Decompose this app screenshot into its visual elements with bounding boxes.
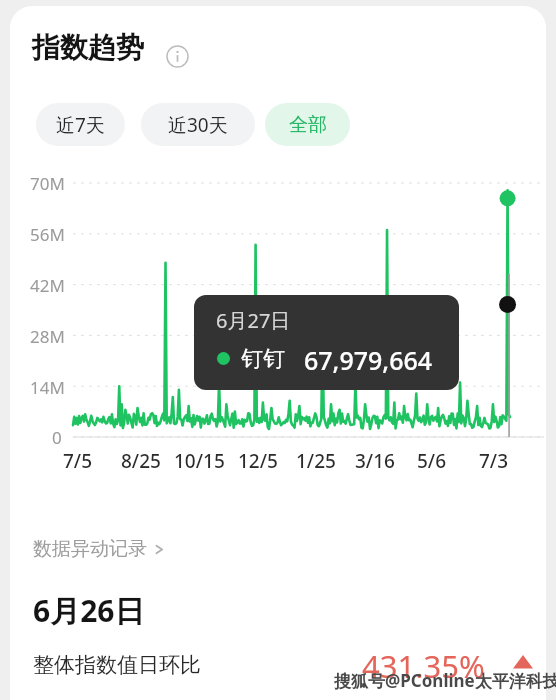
staticText: 42M — [30, 274, 65, 297]
staticText: 6月27日 — [216, 307, 291, 334]
staticText: 7/3 — [479, 448, 509, 474]
staticText: 7/5 — [63, 448, 93, 474]
button[interactable]: 全部 — [265, 103, 350, 146]
staticText: 0 — [52, 426, 62, 449]
staticText: 67,979,664 — [304, 343, 433, 377]
staticText: 整体指数值日环比 — [33, 652, 201, 678]
staticText: 6月26日 — [33, 590, 145, 631]
staticText: 全部 — [289, 113, 327, 137]
staticText: 搜狐号@PConline太平洋科技 — [334, 669, 556, 692]
staticText: 12/5 — [238, 448, 278, 474]
staticText: 3/16 — [355, 448, 395, 474]
staticText: 5/6 — [417, 448, 447, 474]
staticText: 70M — [30, 172, 65, 195]
staticText: 431.35% — [362, 645, 485, 687]
staticText: 28M — [30, 325, 65, 348]
staticText: 近7天 — [56, 112, 105, 138]
staticText: 10/15 — [174, 448, 225, 474]
button[interactable]: 近30天 — [141, 103, 255, 146]
staticText: 14M — [30, 376, 65, 399]
staticText: 8/25 — [121, 448, 161, 474]
button[interactable]: Info — [166, 45, 189, 68]
staticText: 56M — [30, 223, 65, 246]
staticText: 指数趋势 — [32, 30, 144, 65]
staticText: 数据异动记录 — [33, 537, 147, 561]
button[interactable]: 数据异动记录 — [33, 537, 165, 561]
staticText: 近30天 — [168, 112, 228, 138]
staticText: 1/25 — [296, 448, 336, 474]
button[interactable]: 指数趋势 — [32, 30, 144, 65]
staticText: 钉钉 — [241, 345, 285, 373]
button[interactable]: 近7天 — [36, 103, 125, 146]
